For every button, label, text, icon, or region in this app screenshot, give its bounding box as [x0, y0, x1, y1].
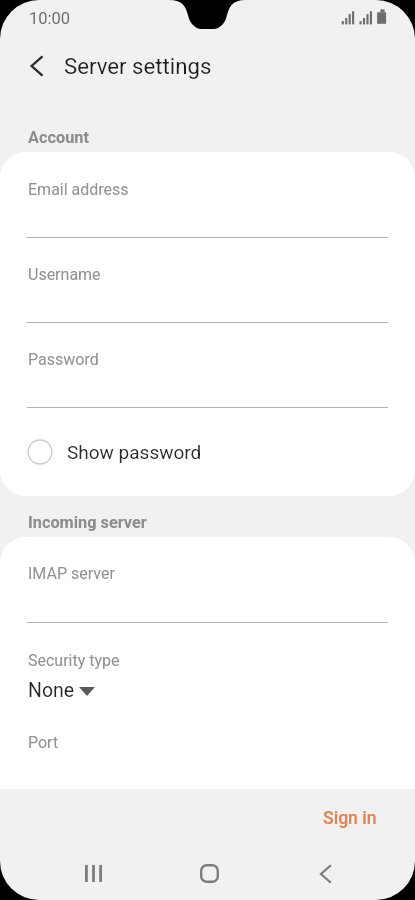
button[interactable]: Email address [0, 162, 415, 236]
staticText: Security type [28, 651, 120, 670]
staticText: Username [28, 265, 101, 284]
button[interactable]: Security type [0, 650, 415, 714]
staticText: Sign in [323, 808, 377, 829]
staticText: 10:00 [29, 9, 71, 28]
button[interactable]: Username [0, 247, 415, 321]
staticText: IMAP server [28, 564, 115, 583]
button[interactable]: Password [0, 332, 415, 406]
button[interactable]: IMAP server [0, 546, 415, 620]
staticText: Show password [67, 441, 202, 463]
staticText: Port [28, 733, 59, 752]
button[interactable]: Back [299, 847, 352, 900]
button[interactable]: Navigate up [20, 50, 52, 82]
staticText: None [28, 679, 75, 702]
staticText: Account [28, 128, 89, 147]
button[interactable]: Show password [0, 427, 415, 477]
button[interactable]: Sign in [302, 789, 398, 848]
staticText: Email address [28, 180, 129, 199]
button[interactable]: Home [183, 847, 236, 900]
button[interactable]: Recent apps [67, 847, 120, 900]
staticText: Incoming server [28, 513, 147, 532]
staticText: Server settings [64, 53, 212, 79]
staticText: Password [28, 350, 99, 369]
button[interactable]: Port [0, 718, 415, 778]
